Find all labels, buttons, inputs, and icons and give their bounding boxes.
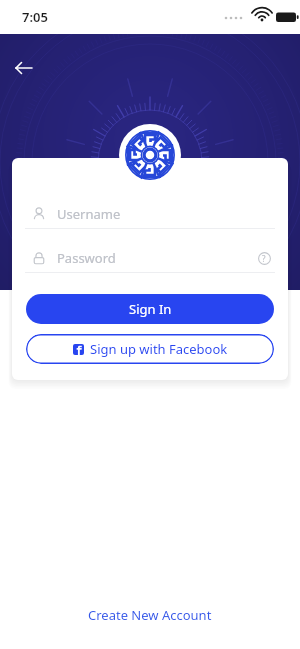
- staticText: ?: [262, 253, 266, 264]
- staticText: Sign up with Facebook: [90, 340, 228, 358]
- staticText: Username: [57, 205, 275, 223]
- button[interactable]: Password: [25, 244, 275, 273]
- button[interactable]: Create New Account: [72, 600, 228, 630]
- button[interactable]: Help: [253, 247, 275, 269]
- button[interactable]: Sign up with Facebook: [26, 334, 274, 364]
- staticText: Create New Account: [88, 606, 212, 624]
- staticText: Sign In: [129, 300, 172, 318]
- button[interactable]: Sign In: [26, 294, 274, 324]
- button[interactable]: Username: [25, 200, 275, 229]
- staticText: Password: [57, 249, 253, 267]
- staticText: 7:05: [22, 8, 48, 26]
- button[interactable]: Back: [8, 52, 40, 84]
